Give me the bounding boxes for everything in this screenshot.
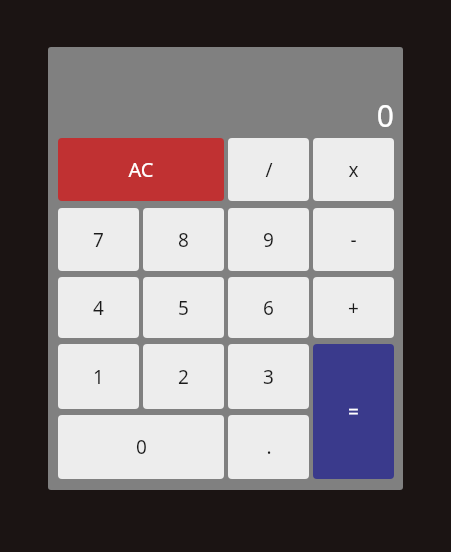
staticText: 0 [136, 434, 147, 460]
staticText: 6 [263, 295, 274, 321]
button[interactable]: 8 [143, 208, 224, 271]
button[interactable]: AC [58, 138, 224, 201]
button[interactable]: 5 [143, 277, 224, 338]
staticText: 7 [93, 227, 104, 253]
staticText: = [348, 399, 359, 425]
staticText: 4 [93, 295, 104, 321]
staticText: + [348, 295, 359, 321]
button[interactable]: + [313, 277, 394, 338]
staticText: 2 [178, 364, 189, 390]
button[interactable]: 6 [228, 277, 309, 338]
staticText: AC [128, 156, 154, 183]
button[interactable]: . [228, 415, 309, 479]
staticText: 3 [263, 364, 274, 390]
staticText: / [265, 157, 273, 183]
button[interactable]: 1 [58, 344, 139, 409]
staticText: - [350, 227, 357, 253]
button[interactable]: 9 [228, 208, 309, 271]
button[interactable]: 3 [228, 344, 309, 409]
button[interactable]: 4 [58, 277, 139, 338]
button[interactable]: x [313, 138, 394, 201]
staticText: x [348, 157, 359, 183]
button[interactable]: 0 [58, 415, 224, 479]
button[interactable]: = [313, 344, 394, 479]
staticText: 0 [376, 95, 394, 136]
staticText: 1 [93, 364, 104, 390]
staticText: . [266, 434, 272, 460]
staticText: 9 [263, 227, 274, 253]
button[interactable]: 2 [143, 344, 224, 409]
staticText: 8 [178, 227, 189, 253]
staticText: 5 [178, 295, 189, 321]
button[interactable]: / [228, 138, 309, 201]
button[interactable]: 7 [58, 208, 139, 271]
button[interactable]: - [313, 208, 394, 271]
